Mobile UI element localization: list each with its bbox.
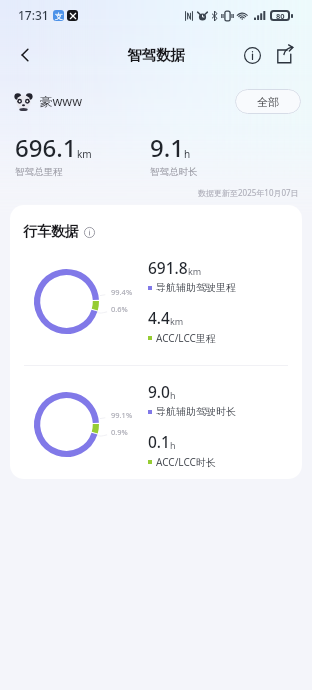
- staticText: km: [77, 147, 92, 161]
- button[interactable]: Back: [8, 38, 42, 72]
- staticText: 行车数据: [23, 223, 79, 241]
- staticText: km: [188, 265, 202, 277]
- staticText: 智驾数据: [127, 46, 185, 64]
- staticText: 4.4: [148, 307, 170, 328]
- staticText: 全部: [257, 95, 279, 109]
- staticText: h: [170, 389, 176, 401]
- staticText: 691.8: [148, 257, 188, 278]
- staticText: 导航辅助驾驶里程: [156, 281, 236, 294]
- button[interactable]: 全部: [235, 89, 301, 114]
- staticText: h: [170, 439, 176, 451]
- button[interactable]: Info: [236, 39, 268, 71]
- staticText: 99.4%: [111, 287, 133, 297]
- staticText: 80: [276, 11, 285, 21]
- staticText: 支: [55, 11, 63, 21]
- staticText: 0.1: [148, 431, 170, 452]
- staticText: 数据更新至2025年10月07日: [198, 187, 299, 198]
- button[interactable]: Share: [269, 39, 301, 71]
- staticText: 99.1%: [111, 410, 133, 420]
- staticText: 智驾总里程: [15, 166, 63, 178]
- staticText: 696.1: [15, 131, 77, 164]
- staticText: 0.9%: [111, 427, 128, 437]
- staticText: 导航辅助驾驶时长: [156, 405, 236, 418]
- staticText: 智驾总时长: [150, 166, 198, 178]
- staticText: ACC/LCC里程: [156, 331, 216, 345]
- staticText: 9.0: [148, 381, 170, 402]
- staticText: h: [184, 147, 191, 161]
- staticText: 0.6%: [111, 304, 128, 314]
- staticText: ACC/LCC时长: [156, 455, 216, 469]
- staticText: 17:31: [18, 7, 49, 23]
- staticText: 9.1: [150, 131, 184, 164]
- staticText: 豪www: [40, 93, 82, 110]
- staticText: km: [170, 315, 184, 327]
